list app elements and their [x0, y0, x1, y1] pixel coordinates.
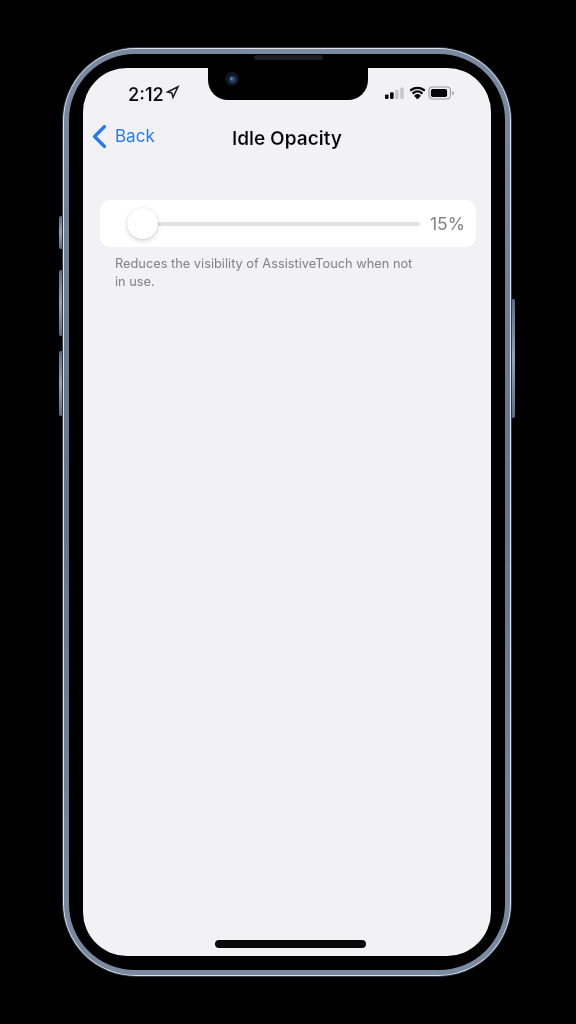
staticText: Reduces the visibility of AssistiveTouch…	[115, 256, 413, 289]
button[interactable]: 15%	[100, 200, 476, 247]
staticText: 2:12	[128, 84, 164, 106]
staticText: Back	[115, 126, 155, 147]
staticText: Idle Opacity	[83, 127, 491, 150]
button[interactable]: Back	[91, 123, 157, 150]
staticText: 15%	[430, 213, 465, 234]
